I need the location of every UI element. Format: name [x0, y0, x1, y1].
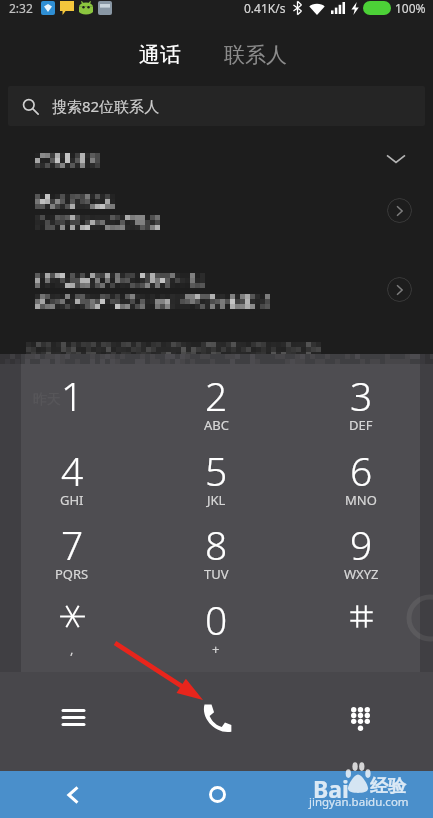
button[interactable]: Details — [387, 198, 412, 223]
button[interactable]: 8 — [144, 503, 288, 578]
button[interactable]: 3 — [289, 354, 433, 429]
staticText: DEF — [349, 416, 373, 434]
staticText: + — [212, 640, 220, 658]
button[interactable]: 通话 — [127, 32, 193, 78]
staticText: 4 — [61, 444, 84, 491]
button[interactable]: Collapse — [381, 144, 411, 174]
staticText: 100% — [395, 0, 426, 16]
staticText: MNO — [345, 491, 377, 509]
staticText: JKL — [207, 491, 226, 509]
button[interactable]: Call — [173, 672, 259, 771]
staticText: Bai — [313, 773, 349, 804]
staticText: GHI — [60, 491, 84, 509]
staticText: 0.41K/s — [244, 0, 286, 16]
staticText: jingyan.baidu.com — [309, 794, 409, 810]
button[interactable]: 5 — [144, 429, 288, 504]
button[interactable]: Details — [0, 179, 433, 241]
button[interactable]: Dialpad — [317, 672, 403, 771]
staticText: 搜索82位联系人 — [52, 96, 160, 116]
button[interactable]: , — [0, 578, 144, 653]
staticText: 1 — [61, 369, 84, 416]
button[interactable]: Back — [0, 771, 145, 818]
staticText: 0 — [205, 593, 228, 640]
staticText: WXYZ — [344, 565, 379, 583]
staticText: 2:32 — [9, 0, 33, 16]
staticText: 6 — [350, 444, 373, 491]
button[interactable]: Home — [145, 771, 289, 818]
staticText: 7 — [61, 518, 84, 565]
button[interactable]: 4 — [0, 429, 144, 504]
button[interactable]: 2 — [144, 354, 288, 429]
button[interactable]: 6 — [289, 429, 433, 504]
button[interactable]: Details — [387, 277, 412, 302]
button[interactable]: 0 — [144, 578, 288, 653]
button[interactable]: Menu — [30, 672, 116, 771]
staticText: TUV — [204, 565, 229, 583]
staticText: 通话 — [139, 42, 181, 68]
staticText: PQRS — [55, 565, 89, 583]
staticText: 2 — [205, 369, 228, 416]
button[interactable]: Recents — [289, 771, 433, 818]
button[interactable]: 联系人 — [212, 32, 299, 78]
staticText: 联系人 — [224, 42, 287, 68]
staticText: 3 — [350, 369, 373, 416]
staticText: , — [70, 640, 74, 658]
staticText: 8 — [205, 518, 228, 565]
staticText: 经验 — [370, 775, 406, 798]
button[interactable]: Details — [0, 258, 433, 320]
button[interactable] — [289, 578, 433, 653]
button[interactable]: Collapse — [0, 139, 433, 179]
button[interactable]: 1 — [0, 354, 144, 429]
button[interactable]: 7 — [0, 503, 144, 578]
staticText: 5 — [205, 444, 228, 491]
staticText: 昨天 — [33, 391, 61, 409]
staticText: 9 — [350, 518, 373, 565]
button[interactable]: 9 — [289, 503, 433, 578]
button[interactable]: 搜索82位联系人 — [8, 86, 425, 126]
staticText: ABC — [204, 416, 229, 434]
